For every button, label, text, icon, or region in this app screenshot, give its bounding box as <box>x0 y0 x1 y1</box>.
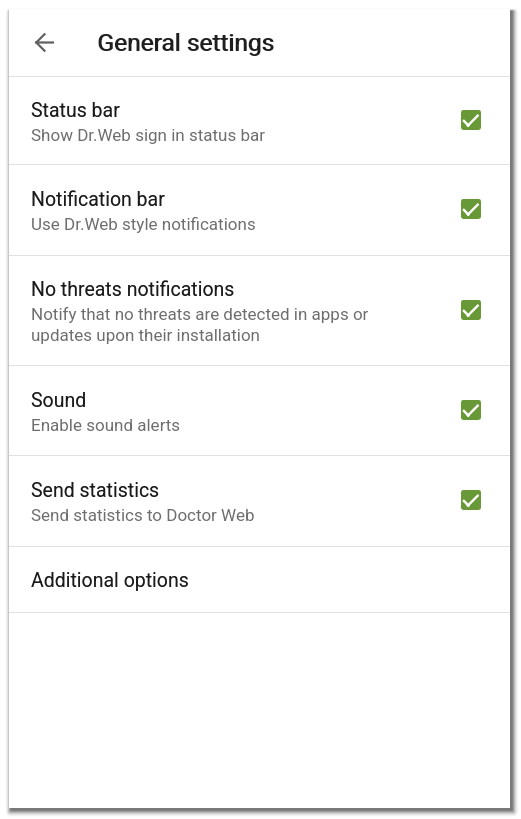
button[interactable]: Send statistics <box>9 456 510 546</box>
staticText: Show Dr.Web sign in status bar <box>31 125 265 145</box>
staticText: Use Dr.Web style notifications <box>31 214 256 234</box>
button[interactable]: No threats notifications <box>9 256 510 365</box>
staticText: Sound <box>31 389 87 412</box>
staticText: Status bar <box>31 99 120 122</box>
staticText: Notification bar <box>31 188 165 211</box>
staticText: General settings <box>98 28 275 57</box>
button[interactable]: Status bar <box>9 77 510 164</box>
staticText: No threats notifications <box>31 278 235 301</box>
button[interactable]: Notification bar <box>9 165 510 255</box>
button[interactable]: Sound <box>9 366 510 455</box>
staticText: Additional options <box>31 569 189 592</box>
staticText: No threats notifications <box>31 278 235 301</box>
staticText: Status bar <box>31 99 120 122</box>
button[interactable]: Enabled <box>461 400 481 420</box>
button[interactable]: Enabled <box>461 110 481 130</box>
staticText: General settings <box>97 28 274 57</box>
staticText: Send statistics <box>31 479 160 502</box>
button[interactable]: Enabled <box>461 490 481 510</box>
button[interactable]: Enabled <box>461 199 481 219</box>
staticText: Notification bar <box>31 188 165 211</box>
staticText: Additional options <box>31 569 189 592</box>
button[interactable]: Additional options <box>9 547 510 612</box>
staticText: Enable sound alerts <box>31 415 181 435</box>
staticText: Send statistics to Doctor Web <box>31 505 255 525</box>
staticText: Sound <box>31 389 87 412</box>
button[interactable]: Enabled <box>461 300 481 320</box>
button[interactable]: Back <box>21 19 67 65</box>
staticText: Notify that no threats are detected in a… <box>31 304 393 345</box>
staticText: Send statistics <box>31 479 160 502</box>
